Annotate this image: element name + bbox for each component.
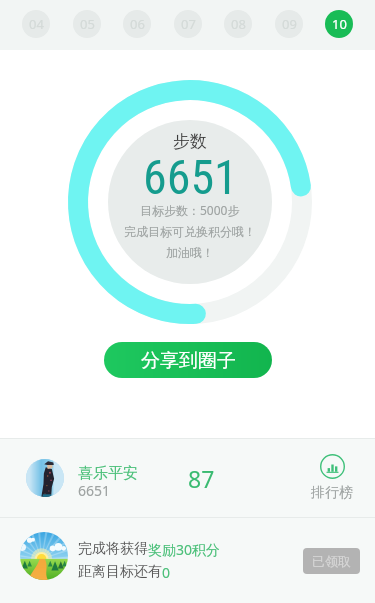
staticText: 加油哦！ <box>166 245 214 260</box>
button[interactable]: 07 <box>174 10 202 38</box>
staticText: 6651 <box>143 149 238 205</box>
staticText: 04 <box>29 15 44 33</box>
button[interactable]: 喜乐平安 <box>0 439 375 517</box>
button[interactable]: 06 <box>123 10 151 38</box>
staticText: 距离目标还有 <box>78 563 162 581</box>
button[interactable]: 05 <box>73 10 101 38</box>
staticText: 05 <box>80 15 95 33</box>
button[interactable]: 04 <box>22 10 50 38</box>
staticText: 完成目标可兑换积分哦！ <box>124 224 256 239</box>
staticText: 完成将获得 <box>78 540 148 558</box>
staticText: 0 <box>162 563 171 582</box>
staticText: 已领取 <box>312 553 351 569</box>
staticText: 09 <box>282 15 297 33</box>
staticText: 排行榜 <box>311 484 353 502</box>
staticText: 08 <box>231 15 246 33</box>
staticText: 6651 <box>78 481 111 500</box>
button[interactable]: 10 <box>325 10 353 38</box>
staticText: 87 <box>188 463 215 494</box>
staticText: 喜乐平安 <box>78 464 138 483</box>
button[interactable]: 08 <box>224 10 252 38</box>
button[interactable]: 09 <box>275 10 303 38</box>
staticText: 步数 <box>173 131 207 152</box>
button[interactable]: 已领取 <box>303 548 360 574</box>
button[interactable]: 排行榜 <box>311 454 353 502</box>
staticText: 07 <box>181 15 196 33</box>
staticText: 06 <box>130 15 145 33</box>
staticText: 10 <box>332 15 347 33</box>
staticText: 目标步数：5000步 <box>140 202 240 218</box>
button[interactable]: 分享到圈子 <box>104 342 272 378</box>
staticText: 奖励30积分 <box>148 540 221 559</box>
staticText: 分享到圈子 <box>141 349 236 373</box>
